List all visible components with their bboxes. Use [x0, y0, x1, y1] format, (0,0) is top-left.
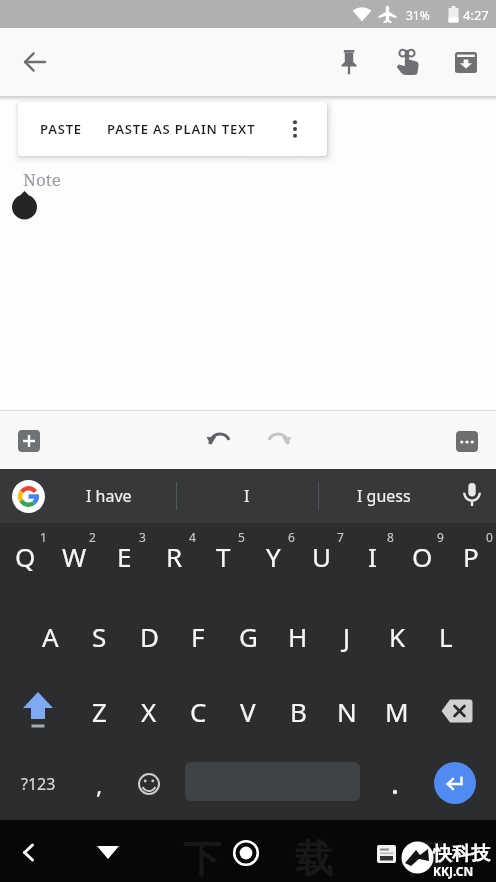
staticText: 4	[189, 529, 196, 545]
staticText: R	[166, 539, 183, 574]
button[interactable]: W	[49, 530, 99, 582]
button[interactable]	[422, 683, 492, 739]
button[interactable]: I have	[59, 469, 159, 523]
staticText: U	[312, 539, 332, 574]
button[interactable]: R	[149, 530, 199, 582]
staticText: A	[42, 619, 59, 654]
button[interactable]	[126, 755, 171, 813]
staticText: N	[337, 694, 357, 729]
button[interactable]: F	[173, 610, 223, 662]
button[interactable]	[275, 102, 315, 156]
button[interactable]: D	[124, 610, 174, 662]
staticText: 下载网	[146, 835, 482, 882]
button[interactable]	[10, 422, 48, 460]
button[interactable]: V	[223, 685, 273, 737]
staticText: 0	[486, 529, 493, 545]
staticText: 4:27	[463, 6, 489, 24]
button[interactable]	[384, 38, 432, 86]
staticText: F	[191, 619, 205, 654]
button[interactable]	[372, 767, 417, 817]
staticText: G	[239, 619, 258, 654]
button[interactable]: O	[397, 530, 447, 582]
button[interactable]: S	[74, 610, 124, 662]
staticText: W	[62, 539, 87, 574]
staticText: Y	[266, 539, 281, 574]
button[interactable]: N	[322, 685, 372, 737]
button[interactable]: PASTE	[20, 102, 102, 156]
button[interactable]: PASTE AS PLAIN TEXT	[106, 102, 257, 156]
button[interactable]	[12, 480, 45, 513]
button[interactable]	[4, 683, 72, 739]
button[interactable]: Q	[0, 530, 50, 582]
staticText: ?123	[21, 773, 56, 795]
staticText: I have	[86, 485, 132, 507]
button[interactable]: B	[273, 685, 323, 737]
button[interactable]: J	[322, 610, 372, 662]
staticText: 9	[437, 529, 444, 545]
button[interactable]: G	[223, 610, 273, 662]
staticText: 5	[238, 529, 245, 545]
staticText: Note	[23, 168, 61, 191]
button[interactable]: E	[99, 530, 149, 582]
button[interactable]: X	[124, 685, 174, 737]
staticText: L	[439, 619, 453, 654]
staticText: ,	[96, 768, 103, 801]
staticText: P	[463, 539, 479, 574]
staticText: T	[216, 539, 231, 574]
button[interactable]: K	[372, 610, 422, 662]
button[interactable]	[4, 828, 52, 876]
staticText: I	[368, 539, 377, 574]
button[interactable]	[11, 38, 59, 86]
staticText: PASTE	[40, 120, 82, 138]
staticText: I	[244, 485, 250, 507]
staticText: V	[240, 694, 256, 729]
button[interactable]: L	[421, 610, 471, 662]
button[interactable]	[258, 420, 298, 460]
button[interactable]: I	[197, 469, 297, 523]
button[interactable]	[434, 762, 476, 804]
button[interactable]	[448, 422, 486, 460]
staticText: 1	[40, 529, 47, 545]
staticText: I guess	[357, 485, 411, 507]
button[interactable]: U	[297, 530, 347, 582]
staticText: S	[92, 619, 107, 654]
staticText: 2	[89, 529, 96, 545]
staticText: D	[140, 619, 159, 654]
staticText: Q	[15, 539, 36, 574]
staticText: PASTE AS PLAIN TEXT	[107, 120, 256, 138]
button[interactable]	[222, 829, 270, 877]
staticText: H	[288, 619, 308, 654]
staticText: B	[290, 694, 307, 729]
staticText: KKJ.CN	[433, 863, 474, 879]
staticText: 快科技	[433, 842, 490, 866]
staticText: O	[412, 539, 433, 574]
button[interactable]	[325, 38, 373, 86]
button[interactable]: A	[25, 610, 75, 662]
button[interactable]: M	[372, 685, 422, 737]
staticText: 6	[288, 529, 295, 545]
button[interactable]	[200, 420, 240, 460]
button[interactable]: I guess	[334, 469, 434, 523]
staticText: C	[190, 694, 207, 729]
staticText: K	[389, 619, 406, 654]
staticText: J	[343, 619, 351, 654]
staticText: 31%	[406, 7, 430, 23]
button[interactable]	[84, 828, 132, 876]
staticText: M	[385, 694, 409, 729]
button[interactable]: P	[446, 530, 496, 582]
button[interactable]: C	[173, 685, 223, 737]
button[interactable]	[442, 38, 490, 86]
button[interactable]: Y	[248, 530, 298, 582]
button[interactable]: ?123	[4, 755, 72, 813]
button[interactable]: H	[273, 610, 323, 662]
button[interactable]: T	[198, 530, 248, 582]
staticText: 8	[387, 529, 394, 545]
button[interactable]	[452, 476, 492, 516]
button[interactable]: I	[347, 530, 397, 582]
staticText: E	[117, 539, 132, 574]
button[interactable]: ,	[77, 755, 122, 813]
button[interactable]: Z	[74, 685, 124, 737]
staticText: 7	[337, 529, 344, 545]
staticText: X	[141, 694, 157, 729]
